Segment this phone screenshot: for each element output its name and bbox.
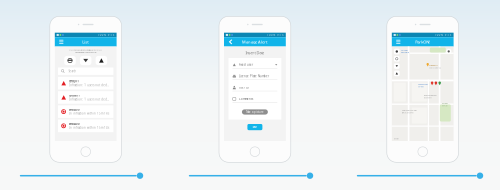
staticText: In infraction within 15m 14s (69, 112, 109, 115)
staticText: 100% 9:15 (98, 33, 115, 37)
staticText: 100% 9:15 (267, 33, 284, 37)
button[interactable]: Take a picture (242, 109, 268, 115)
staticText: EHBA01 (69, 94, 80, 97)
staticText: Search (68, 69, 76, 73)
staticText: 100% 9:15 (435, 33, 452, 37)
staticText: Infraction: 1 users not declared (69, 83, 109, 87)
staticText: In infraction within 15m 14s (69, 126, 109, 129)
button[interactable]: Comments (232, 97, 277, 103)
staticText: EHBA00 (69, 122, 80, 126)
staticText: Google (394, 138, 399, 140)
button[interactable]: EHBJ01 (58, 77, 113, 89)
staticText: Audi Matanza (429, 64, 438, 66)
button[interactable]: Back (226, 37, 235, 46)
staticText: Clinica Luis Cortes (402, 112, 414, 114)
staticText: Centro comercial (429, 67, 441, 69)
staticText: Insert Data (245, 50, 264, 55)
button[interactable]: Treat multiple alerts (96, 56, 107, 65)
staticText: Mensajeria (401, 52, 409, 53)
staticText: Oficina de Atencion (424, 94, 437, 96)
button[interactable]: Save (247, 124, 262, 130)
button[interactable]: Recenter map (446, 49, 451, 54)
button[interactable]: Refresh map (394, 56, 400, 62)
staticText: Take a picture (246, 110, 264, 114)
button[interactable]: User ID (232, 86, 277, 91)
staticText: Centro Unico Terapia (402, 109, 417, 111)
button[interactable]: Alerts (394, 71, 400, 76)
staticText: Estacion Punto (418, 83, 428, 85)
staticText: EHBA00 (69, 108, 80, 111)
button[interactable]: Menu (57, 37, 66, 46)
staticText: Press triangle button to treat multiple … (69, 49, 102, 51)
staticText: License Plate Number (239, 74, 269, 78)
button[interactable]: No parking filter (64, 56, 76, 65)
staticText: Plazoleta (442, 102, 448, 104)
staticText: Fixed user (239, 63, 253, 66)
button[interactable]: Fixed user (232, 63, 277, 68)
button[interactable]: License Plate Number (232, 74, 277, 80)
button[interactable]: Search (58, 67, 113, 75)
button[interactable]: EHBA00 (58, 119, 113, 132)
staticText: ParkON! (415, 39, 430, 44)
button[interactable]: Sort alerts (80, 56, 91, 65)
staticText: Comments (239, 97, 253, 101)
staticText: Infraction: 1 users not declared (69, 98, 109, 101)
staticText: Save (252, 125, 257, 129)
staticText: Manage Alert (242, 39, 268, 44)
button[interactable]: My location (394, 49, 400, 54)
staticText: List (82, 39, 89, 44)
button[interactable]: Menu (394, 37, 403, 46)
staticText: Servicios (401, 50, 408, 51)
staticText: Don Luis (442, 105, 448, 107)
button[interactable]: EHBA01 (58, 91, 113, 104)
staticText: Ciudadana (424, 97, 432, 99)
staticText: an item of the list to treat alert indiv… (75, 52, 97, 53)
button[interactable]: EHBA00 (58, 105, 113, 118)
staticText: EHBJ01 (69, 79, 79, 83)
staticText: Servicio (418, 86, 424, 88)
button[interactable]: Sort (394, 63, 400, 69)
staticText: User ID (239, 86, 249, 89)
